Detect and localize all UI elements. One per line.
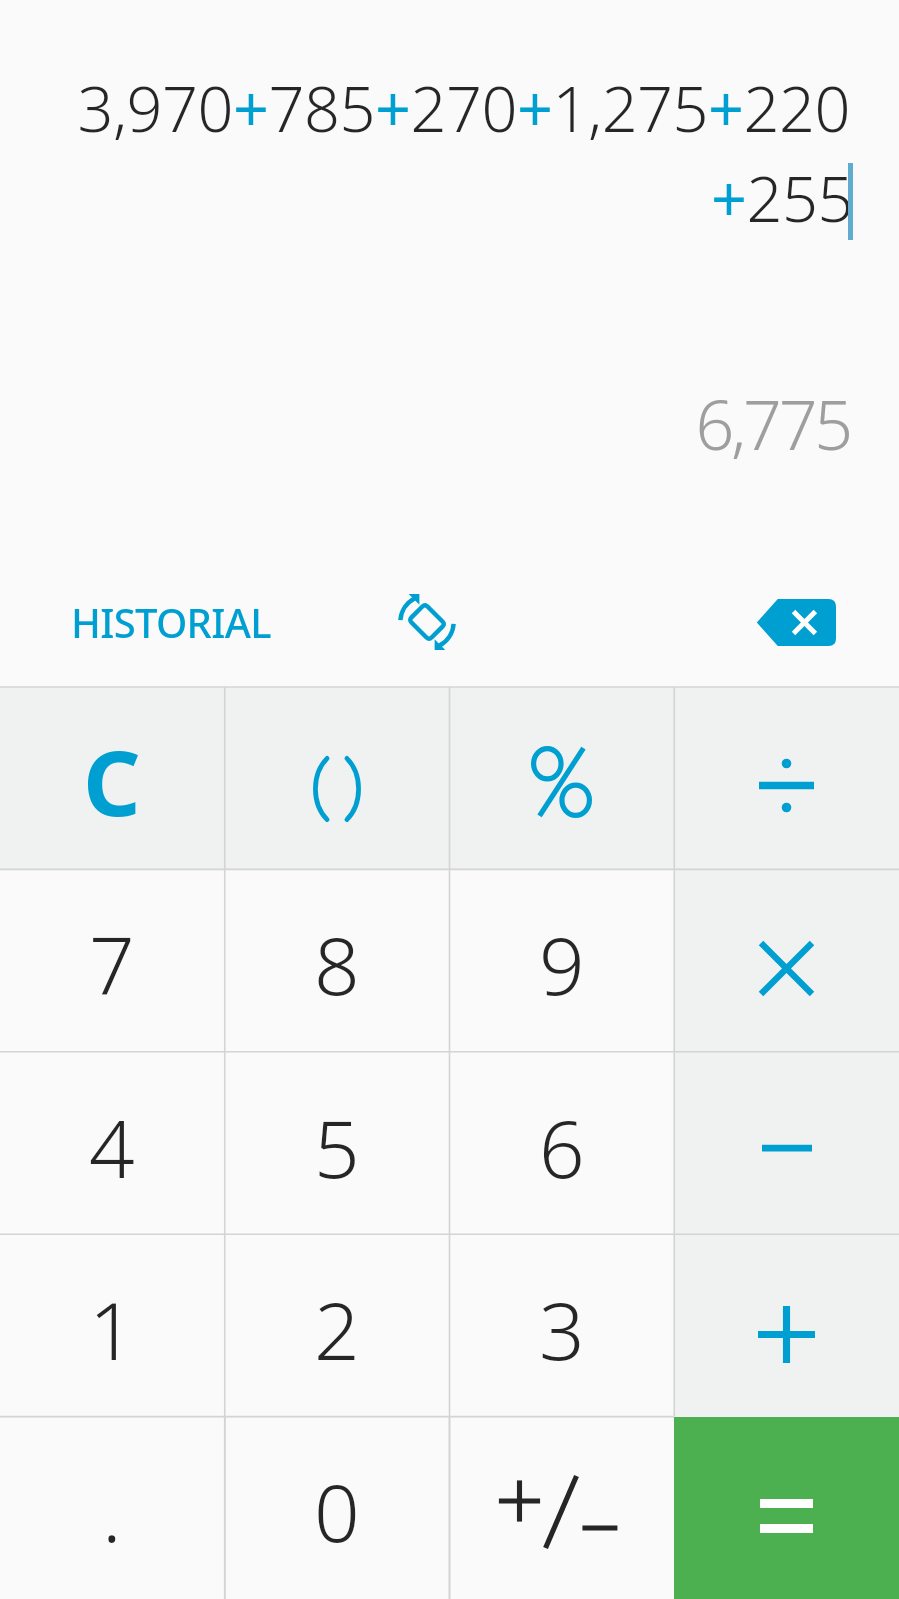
button[interactable]: 0	[224, 1417, 449, 1599]
button[interactable]	[674, 870, 899, 1053]
button[interactable]: Rotate screen	[373, 568, 481, 676]
button[interactable]: 9	[449, 870, 674, 1053]
button[interactable]: 4	[0, 1053, 224, 1235]
button[interactable]: 7	[0, 870, 224, 1053]
staticText: C	[83, 720, 141, 843]
staticText: 5	[314, 1092, 360, 1201]
button[interactable]: 5	[224, 1053, 449, 1235]
staticText: 6	[539, 1092, 585, 1201]
button[interactable]: 8	[224, 870, 449, 1053]
button[interactable]: C	[0, 687, 224, 870]
button[interactable]: HISTORIAL	[28, 567, 313, 677]
staticText: 4	[89, 1092, 135, 1201]
staticText: 7	[89, 909, 135, 1018]
button[interactable]: .	[0, 1417, 224, 1599]
staticText: .	[102, 1456, 122, 1565]
staticText: 3,970+785+270+1,275+220	[20, 65, 850, 151]
button[interactable]: 3	[449, 1235, 674, 1417]
button[interactable]: 1	[0, 1235, 224, 1417]
button[interactable]	[224, 687, 449, 870]
staticText: 3	[539, 1274, 585, 1383]
staticText: HISTORIAL	[71, 595, 271, 649]
staticText: +255	[23, 155, 853, 241]
button[interactable]: 2	[224, 1235, 449, 1417]
staticText: 6,775	[695, 377, 850, 470]
button[interactable]: 6	[449, 1053, 674, 1235]
button[interactable]	[674, 687, 899, 870]
staticText: 9	[539, 909, 585, 1018]
button[interactable]	[674, 1417, 899, 1599]
staticText: 8	[314, 909, 360, 1018]
button[interactable]	[674, 1053, 899, 1235]
button[interactable]	[674, 1235, 899, 1417]
button[interactable]	[449, 1417, 674, 1599]
staticText: 0	[314, 1456, 360, 1565]
staticText: 2	[314, 1274, 360, 1383]
button[interactable]: Backspace	[735, 567, 855, 677]
button[interactable]	[449, 687, 674, 870]
staticText: 1	[89, 1274, 135, 1383]
